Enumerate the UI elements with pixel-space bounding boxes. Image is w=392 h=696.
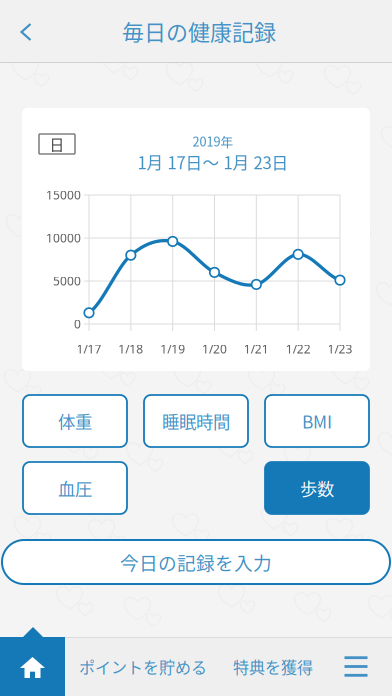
button[interactable]: BMI (265, 395, 369, 447)
button[interactable]: 今日の記録を入力 (2, 540, 390, 584)
staticText: 歩数 (300, 475, 334, 501)
staticText: 5000 (53, 273, 81, 289)
staticText: 1/19 (160, 341, 185, 357)
staticText: 特典を獲得 (233, 655, 313, 678)
button[interactable]: 日 (39, 134, 75, 154)
button[interactable]: 睡眠時間 (144, 395, 248, 447)
staticText: 体重 (58, 408, 92, 434)
button[interactable]: ホーム (0, 637, 65, 696)
staticText: 1/22 (286, 341, 311, 357)
staticText: 毎日の健康記録 (122, 15, 276, 47)
staticText: 1/21 (244, 341, 269, 357)
button[interactable]: 体重 (23, 395, 127, 447)
button[interactable]: メニュー (330, 637, 382, 696)
button[interactable]: ポイントを貯める (79, 637, 207, 696)
staticText: 今日の記録を入力 (120, 548, 272, 575)
staticText: 日 (49, 133, 64, 155)
staticText: 1/20 (202, 341, 227, 357)
staticText: BMI (302, 408, 332, 434)
staticText: 血圧 (58, 475, 92, 501)
staticText: 1/23 (327, 341, 352, 357)
staticText: 1月 17日〜 1月 23日 (137, 150, 288, 174)
button[interactable]: 血圧 (23, 462, 127, 514)
staticText: 睡眠時間 (162, 408, 230, 434)
staticText: 0 (74, 316, 81, 332)
staticText: 1/18 (118, 341, 143, 357)
staticText: ポイントを貯める (79, 655, 207, 678)
button[interactable]: 歩数 (265, 462, 369, 514)
staticText: 15000 (46, 187, 81, 203)
button[interactable]: 特典を獲得 (228, 637, 318, 696)
staticText: 1/17 (76, 341, 101, 357)
staticText: 2019年 (192, 132, 233, 150)
button[interactable]: 戻る (4, 10, 48, 54)
staticText: 10000 (46, 230, 81, 246)
